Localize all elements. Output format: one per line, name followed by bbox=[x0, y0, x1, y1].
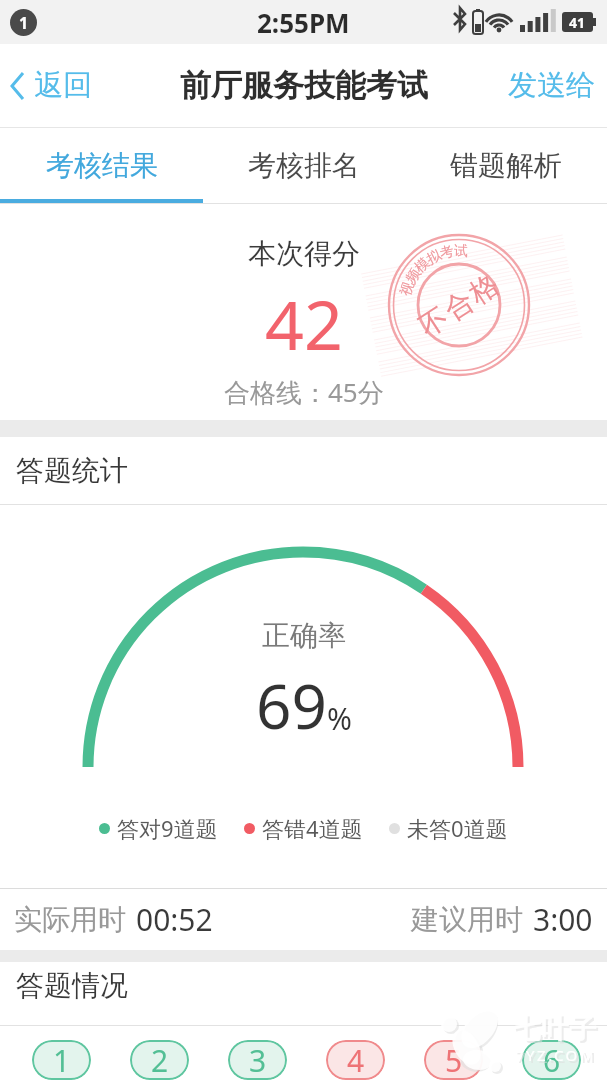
staticText: 正确率 bbox=[262, 618, 346, 653]
staticText: 错题解析 bbox=[450, 148, 562, 183]
staticText: 答对9道题 bbox=[117, 813, 218, 843]
staticText: 模 bbox=[411, 254, 434, 277]
button[interactable]: 2 bbox=[130, 1040, 189, 1080]
staticText: 实际用时 bbox=[14, 902, 126, 937]
staticText: 七叶子 bbox=[513, 1012, 597, 1046]
staticText: 1 bbox=[53, 1040, 71, 1080]
staticText: 3 bbox=[249, 1040, 267, 1080]
staticText: 合格线：45分 bbox=[224, 374, 384, 410]
staticText: 7YZ.COM bbox=[515, 1045, 596, 1065]
staticText: 5 bbox=[445, 1040, 463, 1080]
staticText: 返回 bbox=[34, 67, 92, 104]
staticText: 41 bbox=[569, 13, 586, 32]
staticText: 试 bbox=[454, 242, 468, 261]
staticText: % bbox=[327, 698, 352, 739]
staticText: 拟 bbox=[424, 246, 444, 269]
staticText: 3:00 bbox=[533, 899, 593, 940]
staticText: 7YZ.COM bbox=[517, 1047, 598, 1067]
staticText: 答题统计 bbox=[16, 453, 128, 488]
button[interactable]: 考核排名 bbox=[203, 128, 405, 203]
staticText: 发送给 bbox=[508, 67, 595, 104]
button[interactable]: 5 bbox=[424, 1040, 483, 1080]
staticText: 频 bbox=[402, 265, 425, 287]
button[interactable]: 1 bbox=[32, 1040, 91, 1080]
staticText: 6 bbox=[543, 1040, 561, 1080]
staticText: 考核排名 bbox=[248, 148, 360, 183]
staticText: 答错4道题 bbox=[262, 813, 363, 843]
button[interactable]: 3 bbox=[228, 1040, 287, 1080]
staticText: 考核结果 bbox=[46, 148, 158, 183]
staticText: 2 bbox=[151, 1040, 169, 1080]
staticText: 建议用时 bbox=[411, 902, 523, 937]
staticText: 答题情况 bbox=[16, 968, 128, 1003]
staticText: 69 bbox=[256, 663, 327, 747]
staticText: 不合格 bbox=[412, 266, 506, 345]
staticText: 1 bbox=[19, 12, 29, 34]
button[interactable]: 返回 bbox=[8, 67, 92, 104]
staticText: 2:55PM bbox=[257, 5, 350, 40]
staticText: 视 bbox=[397, 279, 418, 298]
staticText: 4 bbox=[347, 1040, 365, 1080]
staticText: 42 bbox=[265, 277, 343, 370]
staticText: 未答0道题 bbox=[407, 813, 508, 843]
staticText: 考 bbox=[438, 242, 456, 263]
staticText: 00:52 bbox=[136, 899, 213, 940]
staticText: 本次得分 bbox=[248, 236, 360, 271]
button[interactable]: 错题解析 bbox=[405, 128, 607, 203]
button[interactable]: 发送给 bbox=[508, 67, 607, 104]
staticText: 前厅服务技能考试 bbox=[180, 66, 428, 105]
staticText: 七叶子 bbox=[515, 1014, 599, 1048]
button[interactable]: 4 bbox=[326, 1040, 385, 1080]
button[interactable]: 6 bbox=[522, 1040, 581, 1080]
button[interactable]: 考核结果 bbox=[0, 128, 203, 203]
